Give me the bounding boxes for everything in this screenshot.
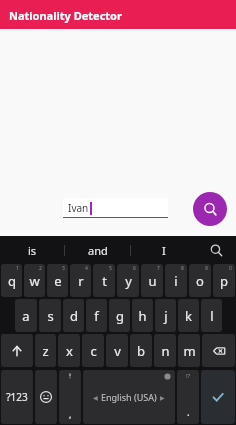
staticText: !?	[186, 372, 191, 380]
staticText: a	[22, 307, 30, 325]
staticText: 5	[109, 265, 112, 272]
staticText: ◀	[93, 394, 98, 401]
button[interactable]: k	[178, 299, 199, 332]
staticText: .	[187, 405, 190, 419]
button[interactable]: x	[58, 334, 80, 367]
button[interactable]: g	[109, 299, 130, 332]
staticText: 3	[62, 265, 65, 272]
button[interactable]: Backspace	[202, 334, 235, 367]
staticText: Nationality Detector	[9, 8, 122, 23]
staticText: t	[102, 272, 107, 290]
staticText: 0	[229, 265, 232, 272]
button[interactable]: 4	[70, 264, 91, 297]
staticText: English (USA)	[101, 391, 157, 403]
button[interactable]: a	[15, 299, 37, 332]
button[interactable]: 9	[189, 264, 211, 297]
button[interactable]: 1	[1, 264, 22, 297]
button[interactable]: 5	[93, 264, 115, 297]
staticText: ?123	[6, 390, 28, 404]
button[interactable]: z	[35, 334, 56, 367]
staticText: v	[114, 342, 121, 360]
staticText: 1	[16, 265, 19, 272]
button[interactable]: s	[39, 299, 61, 332]
button[interactable]: Comma	[59, 370, 81, 424]
staticText: y	[125, 272, 132, 290]
button[interactable]: ?123	[1, 370, 33, 424]
staticText: s	[47, 307, 54, 325]
button[interactable]: j	[155, 299, 176, 332]
staticText: 6	[133, 265, 136, 272]
button[interactable]: c	[82, 334, 104, 367]
button[interactable]: h	[132, 299, 153, 332]
button[interactable]: v	[106, 334, 128, 367]
button[interactable]: Search / Enter	[201, 370, 235, 424]
button[interactable]: is	[0, 236, 64, 264]
button[interactable]: 8	[165, 264, 187, 297]
staticText: n	[161, 342, 170, 360]
button[interactable]: l	[201, 299, 222, 332]
staticText: p	[220, 272, 228, 290]
staticText: ▶	[160, 394, 165, 401]
staticText: 9	[205, 265, 208, 272]
button[interactable]: n	[154, 334, 176, 367]
staticText: 2	[39, 265, 42, 272]
button[interactable]: I	[131, 236, 196, 264]
button[interactable]: b	[130, 334, 152, 367]
staticText: r	[78, 272, 84, 290]
staticText: Ivan	[68, 201, 89, 215]
button[interactable]: 3	[47, 264, 68, 297]
staticText: l	[210, 307, 214, 325]
staticText: 8	[181, 265, 184, 272]
staticText: and	[88, 243, 108, 258]
staticText: b	[137, 342, 145, 360]
staticText: h	[138, 307, 147, 325]
button[interactable]: Voice search	[196, 236, 236, 264]
button[interactable]: Shift	[1, 334, 33, 367]
button[interactable]: Ivan	[63, 198, 168, 218]
staticText: i	[174, 272, 178, 290]
button[interactable]: 0	[213, 264, 235, 297]
button[interactable]: d	[63, 299, 84, 332]
staticText: z	[42, 342, 49, 360]
button[interactable]: Emoji	[35, 370, 57, 424]
staticText: w	[29, 272, 40, 290]
button[interactable]: Period	[177, 370, 199, 424]
button[interactable]: f	[86, 299, 107, 332]
staticText: ,	[69, 408, 72, 420]
button[interactable]: Search	[193, 192, 227, 226]
staticText: 7	[157, 265, 160, 272]
button[interactable]: m	[178, 334, 200, 367]
button[interactable]: 6	[117, 264, 139, 297]
staticText: u	[148, 272, 157, 290]
staticText: 4	[85, 265, 88, 272]
button[interactable]: ◀	[83, 370, 175, 424]
button[interactable]: 7	[141, 264, 163, 297]
staticText: k	[185, 307, 192, 325]
staticText: f	[94, 307, 99, 325]
button[interactable]: and	[65, 236, 130, 264]
staticText: I	[162, 243, 166, 258]
staticText: q	[8, 272, 16, 290]
staticText: x	[66, 342, 73, 360]
staticText: g	[116, 307, 124, 325]
button[interactable]: 2	[24, 264, 45, 297]
staticText: c	[90, 342, 97, 360]
staticText: e	[54, 272, 62, 290]
staticText: is	[28, 243, 37, 258]
staticText: j	[164, 307, 168, 325]
staticText: o	[196, 272, 204, 290]
staticText: d	[70, 307, 78, 325]
staticText: m	[183, 342, 196, 360]
